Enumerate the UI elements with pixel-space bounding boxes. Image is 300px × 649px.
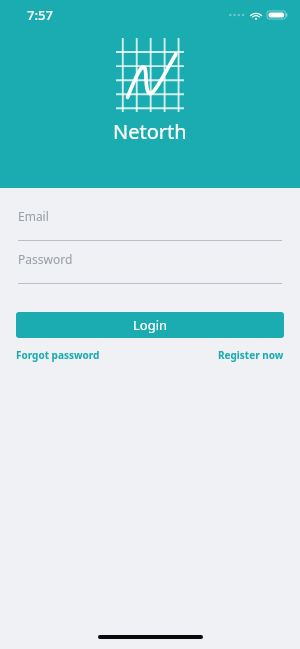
button[interactable]: Forgot password bbox=[16, 346, 100, 364]
staticText: Register now bbox=[218, 348, 284, 362]
staticText: 7:57 bbox=[27, 6, 53, 24]
staticText: Password bbox=[18, 251, 73, 267]
staticText: Netorth bbox=[113, 118, 187, 145]
staticText: Login bbox=[133, 316, 168, 334]
staticText: Forgot password bbox=[16, 348, 100, 362]
button[interactable]: Register now bbox=[218, 346, 284, 364]
button[interactable]: Login bbox=[16, 312, 284, 338]
staticText: Email bbox=[18, 208, 49, 224]
